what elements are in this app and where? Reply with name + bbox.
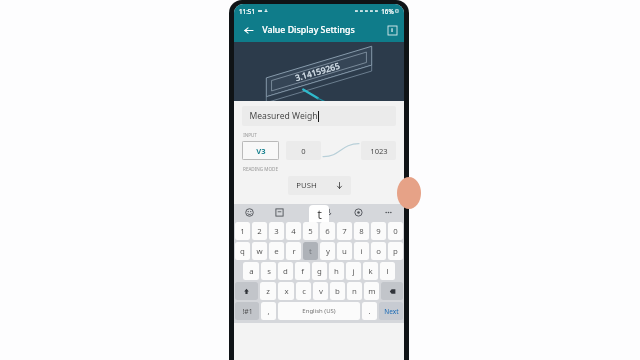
- staticText: u: [342, 246, 347, 257]
- staticText: m: [368, 286, 376, 297]
- button[interactable]: f: [295, 262, 310, 280]
- staticText: s: [267, 266, 271, 277]
- button[interactable]: q: [235, 242, 250, 260]
- button[interactable]: e: [269, 242, 284, 260]
- staticText: a: [249, 266, 254, 277]
- staticText: i: [360, 246, 363, 257]
- staticText: 3.14159265: [293, 60, 342, 84]
- button[interactable]: PUSH: [288, 176, 351, 195]
- staticText: .: [368, 306, 371, 316]
- staticText: j: [352, 266, 355, 277]
- staticText: 0: [393, 226, 398, 237]
- button[interactable]: t: [303, 242, 318, 260]
- button[interactable]: !#1: [235, 302, 259, 320]
- button[interactable]: w: [252, 242, 267, 260]
- button[interactable]: 1023: [361, 141, 396, 160]
- button[interactable]: Info: [386, 24, 398, 36]
- button[interactable]: d: [278, 262, 293, 280]
- button[interactable]: c: [296, 282, 311, 300]
- button[interactable]: n: [347, 282, 362, 300]
- staticText: 3: [274, 226, 279, 237]
- button[interactable]: x: [278, 282, 294, 300]
- button[interactable]: Backspace: [381, 282, 403, 300]
- button[interactable]: m: [364, 282, 379, 300]
- button[interactable]: 6: [320, 222, 335, 240]
- staticText: h: [334, 266, 339, 277]
- staticText: 1: [240, 226, 245, 237]
- staticText: l: [386, 266, 389, 277]
- button[interactable]: Keyboard settings: [352, 206, 365, 219]
- button[interactable]: Next: [379, 302, 403, 320]
- staticText: Next: [384, 307, 399, 316]
- button[interactable]: 1: [235, 222, 250, 240]
- button[interactable]: 4: [286, 222, 301, 240]
- staticText: Value Display Settings: [262, 24, 355, 36]
- staticText: Measured Weigh: [249, 110, 318, 122]
- button[interactable]: o: [371, 242, 386, 260]
- button[interactable]: u: [337, 242, 352, 260]
- staticText: g: [317, 266, 322, 277]
- staticText: e: [274, 246, 279, 257]
- staticText: 0: [301, 146, 306, 156]
- staticText: p: [393, 246, 398, 257]
- button[interactable]: s: [261, 262, 276, 280]
- staticText: 7: [342, 226, 347, 237]
- button[interactable]: Measured Weigh: [242, 106, 396, 126]
- staticText: y: [326, 246, 330, 257]
- button[interactable]: Shift: [235, 282, 258, 300]
- button[interactable]: 9: [371, 222, 386, 240]
- button[interactable]: Voice input: [322, 206, 335, 219]
- staticText: English (US): [302, 307, 336, 315]
- button[interactable]: 8: [354, 222, 369, 240]
- staticText: v: [319, 286, 323, 297]
- button[interactable]: .: [362, 302, 377, 320]
- button[interactable]: a: [243, 262, 259, 280]
- button[interactable]: y: [320, 242, 335, 260]
- staticText: w: [256, 246, 263, 257]
- button[interactable]: V3: [242, 141, 279, 160]
- staticText: b: [335, 286, 340, 297]
- staticText: f: [301, 266, 304, 277]
- staticText: 8: [359, 226, 364, 237]
- staticText: ,: [267, 306, 270, 316]
- staticText: i: [391, 26, 393, 34]
- button[interactable]: Emoji: [243, 206, 256, 219]
- button[interactable]: 0: [286, 141, 321, 160]
- staticText: 4: [291, 226, 296, 237]
- staticText: 5: [308, 226, 313, 237]
- staticText: t: [317, 205, 322, 222]
- button[interactable]: Stickers: [273, 206, 286, 219]
- button[interactable]: g: [312, 262, 327, 280]
- staticText: t: [309, 246, 312, 257]
- staticText: 16%: [381, 7, 394, 15]
- staticText: 11:51: [239, 7, 255, 15]
- staticText: READING MODE: [243, 166, 278, 172]
- staticText: n: [352, 286, 357, 297]
- button[interactable]: h: [329, 262, 344, 280]
- button[interactable]: i: [354, 242, 369, 260]
- staticText: c: [302, 286, 306, 297]
- button[interactable]: r: [286, 242, 301, 260]
- button[interactable]: l: [380, 262, 395, 280]
- button[interactable]: p: [388, 242, 403, 260]
- button[interactable]: 7: [337, 222, 352, 240]
- button[interactable]: b: [330, 282, 345, 300]
- button[interactable]: 0: [388, 222, 403, 240]
- button[interactable]: 5: [303, 222, 318, 240]
- button[interactable]: English (US): [278, 302, 360, 320]
- staticText: d: [283, 266, 288, 277]
- button[interactable]: j: [346, 262, 361, 280]
- staticText: r: [292, 246, 296, 257]
- button[interactable]: 2: [252, 222, 267, 240]
- staticText: x: [284, 286, 289, 297]
- button[interactable]: 3: [269, 222, 284, 240]
- button[interactable]: k: [363, 262, 378, 280]
- button[interactable]: v: [313, 282, 328, 300]
- button[interactable]: Back: [240, 22, 256, 38]
- button[interactable]: ,: [261, 302, 276, 320]
- staticText: 2: [257, 226, 262, 237]
- staticText: q: [240, 246, 245, 257]
- button[interactable]: More options: [382, 206, 395, 219]
- staticText: PUSH: [296, 180, 317, 191]
- button[interactable]: z: [260, 282, 276, 300]
